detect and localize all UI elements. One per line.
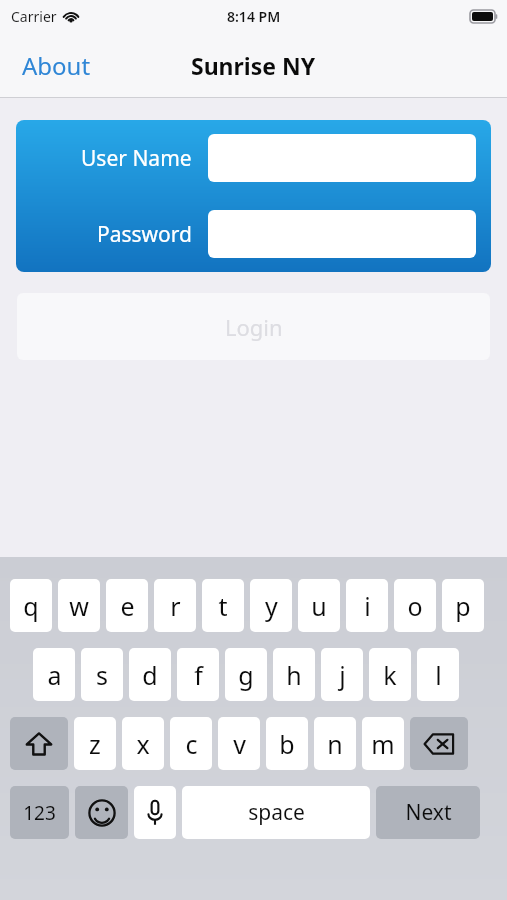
staticText: f: [194, 658, 203, 692]
staticText: j: [339, 658, 346, 692]
staticText: x: [136, 727, 150, 761]
button[interactable]: v: [218, 717, 260, 770]
button[interactable]: o: [394, 579, 436, 632]
staticText: Password: [97, 220, 192, 249]
staticText: n: [327, 727, 343, 761]
button[interactable]: space: [182, 786, 370, 839]
button[interactable]: Shift: [10, 717, 68, 770]
staticText: w: [69, 589, 89, 623]
staticText: User Name: [81, 144, 192, 173]
staticText: t: [218, 589, 228, 623]
staticText: h: [286, 658, 302, 692]
button[interactable]: x: [122, 717, 164, 770]
button[interactable]: r: [154, 579, 196, 632]
button[interactable]: k: [369, 648, 411, 701]
button[interactable]: s: [81, 648, 123, 701]
staticText: Carrier: [11, 7, 57, 26]
staticText: b: [279, 727, 295, 761]
button[interactable]: Password field: [208, 210, 476, 258]
staticText: Sunrise NY: [191, 50, 316, 81]
staticText: y: [265, 589, 278, 623]
button[interactable]: Backspace: [410, 717, 468, 770]
staticText: u: [311, 589, 327, 623]
button[interactable]: f: [177, 648, 219, 701]
staticText: r: [170, 589, 181, 623]
button[interactable]: User Name field: [208, 134, 476, 182]
button[interactable]: c: [170, 717, 212, 770]
button[interactable]: d: [129, 648, 171, 701]
button[interactable]: Dictation: [134, 786, 176, 839]
staticText: k: [383, 658, 397, 692]
button[interactable]: About: [16, 43, 97, 88]
staticText: z: [89, 727, 101, 761]
button[interactable]: z: [74, 717, 116, 770]
button[interactable]: l: [417, 648, 459, 701]
staticText: Login: [225, 312, 283, 342]
button[interactable]: 123: [10, 786, 69, 839]
button[interactable]: a: [33, 648, 75, 701]
button[interactable]: p: [442, 579, 484, 632]
staticText: 123: [23, 800, 56, 826]
staticText: a: [47, 658, 62, 692]
button[interactable]: q: [10, 579, 52, 632]
button[interactable]: e: [106, 579, 148, 632]
staticText: o: [407, 589, 423, 623]
button[interactable]: b: [266, 717, 308, 770]
staticText: space: [248, 798, 305, 827]
staticText: s: [96, 658, 108, 692]
button[interactable]: m: [362, 717, 404, 770]
staticText: i: [364, 589, 371, 623]
staticText: g: [238, 658, 254, 692]
staticText: 8:14 PM: [227, 7, 281, 26]
button[interactable]: u: [298, 579, 340, 632]
button[interactable]: h: [273, 648, 315, 701]
staticText: e: [120, 589, 135, 623]
button[interactable]: Next: [376, 786, 480, 839]
staticText: p: [455, 589, 471, 623]
button[interactable]: t: [202, 579, 244, 632]
button[interactable]: g: [225, 648, 267, 701]
button[interactable]: i: [346, 579, 388, 632]
button[interactable]: y: [250, 579, 292, 632]
button[interactable]: w: [58, 579, 100, 632]
staticText: c: [185, 727, 198, 761]
button[interactable]: n: [314, 717, 356, 770]
staticText: v: [233, 727, 246, 761]
button[interactable]: Emoji: [75, 786, 128, 839]
staticText: l: [435, 658, 442, 692]
button[interactable]: j: [321, 648, 363, 701]
staticText: Next: [405, 798, 452, 827]
staticText: m: [371, 727, 395, 761]
staticText: d: [142, 658, 158, 692]
staticText: q: [23, 589, 39, 623]
staticText: About: [22, 49, 91, 82]
